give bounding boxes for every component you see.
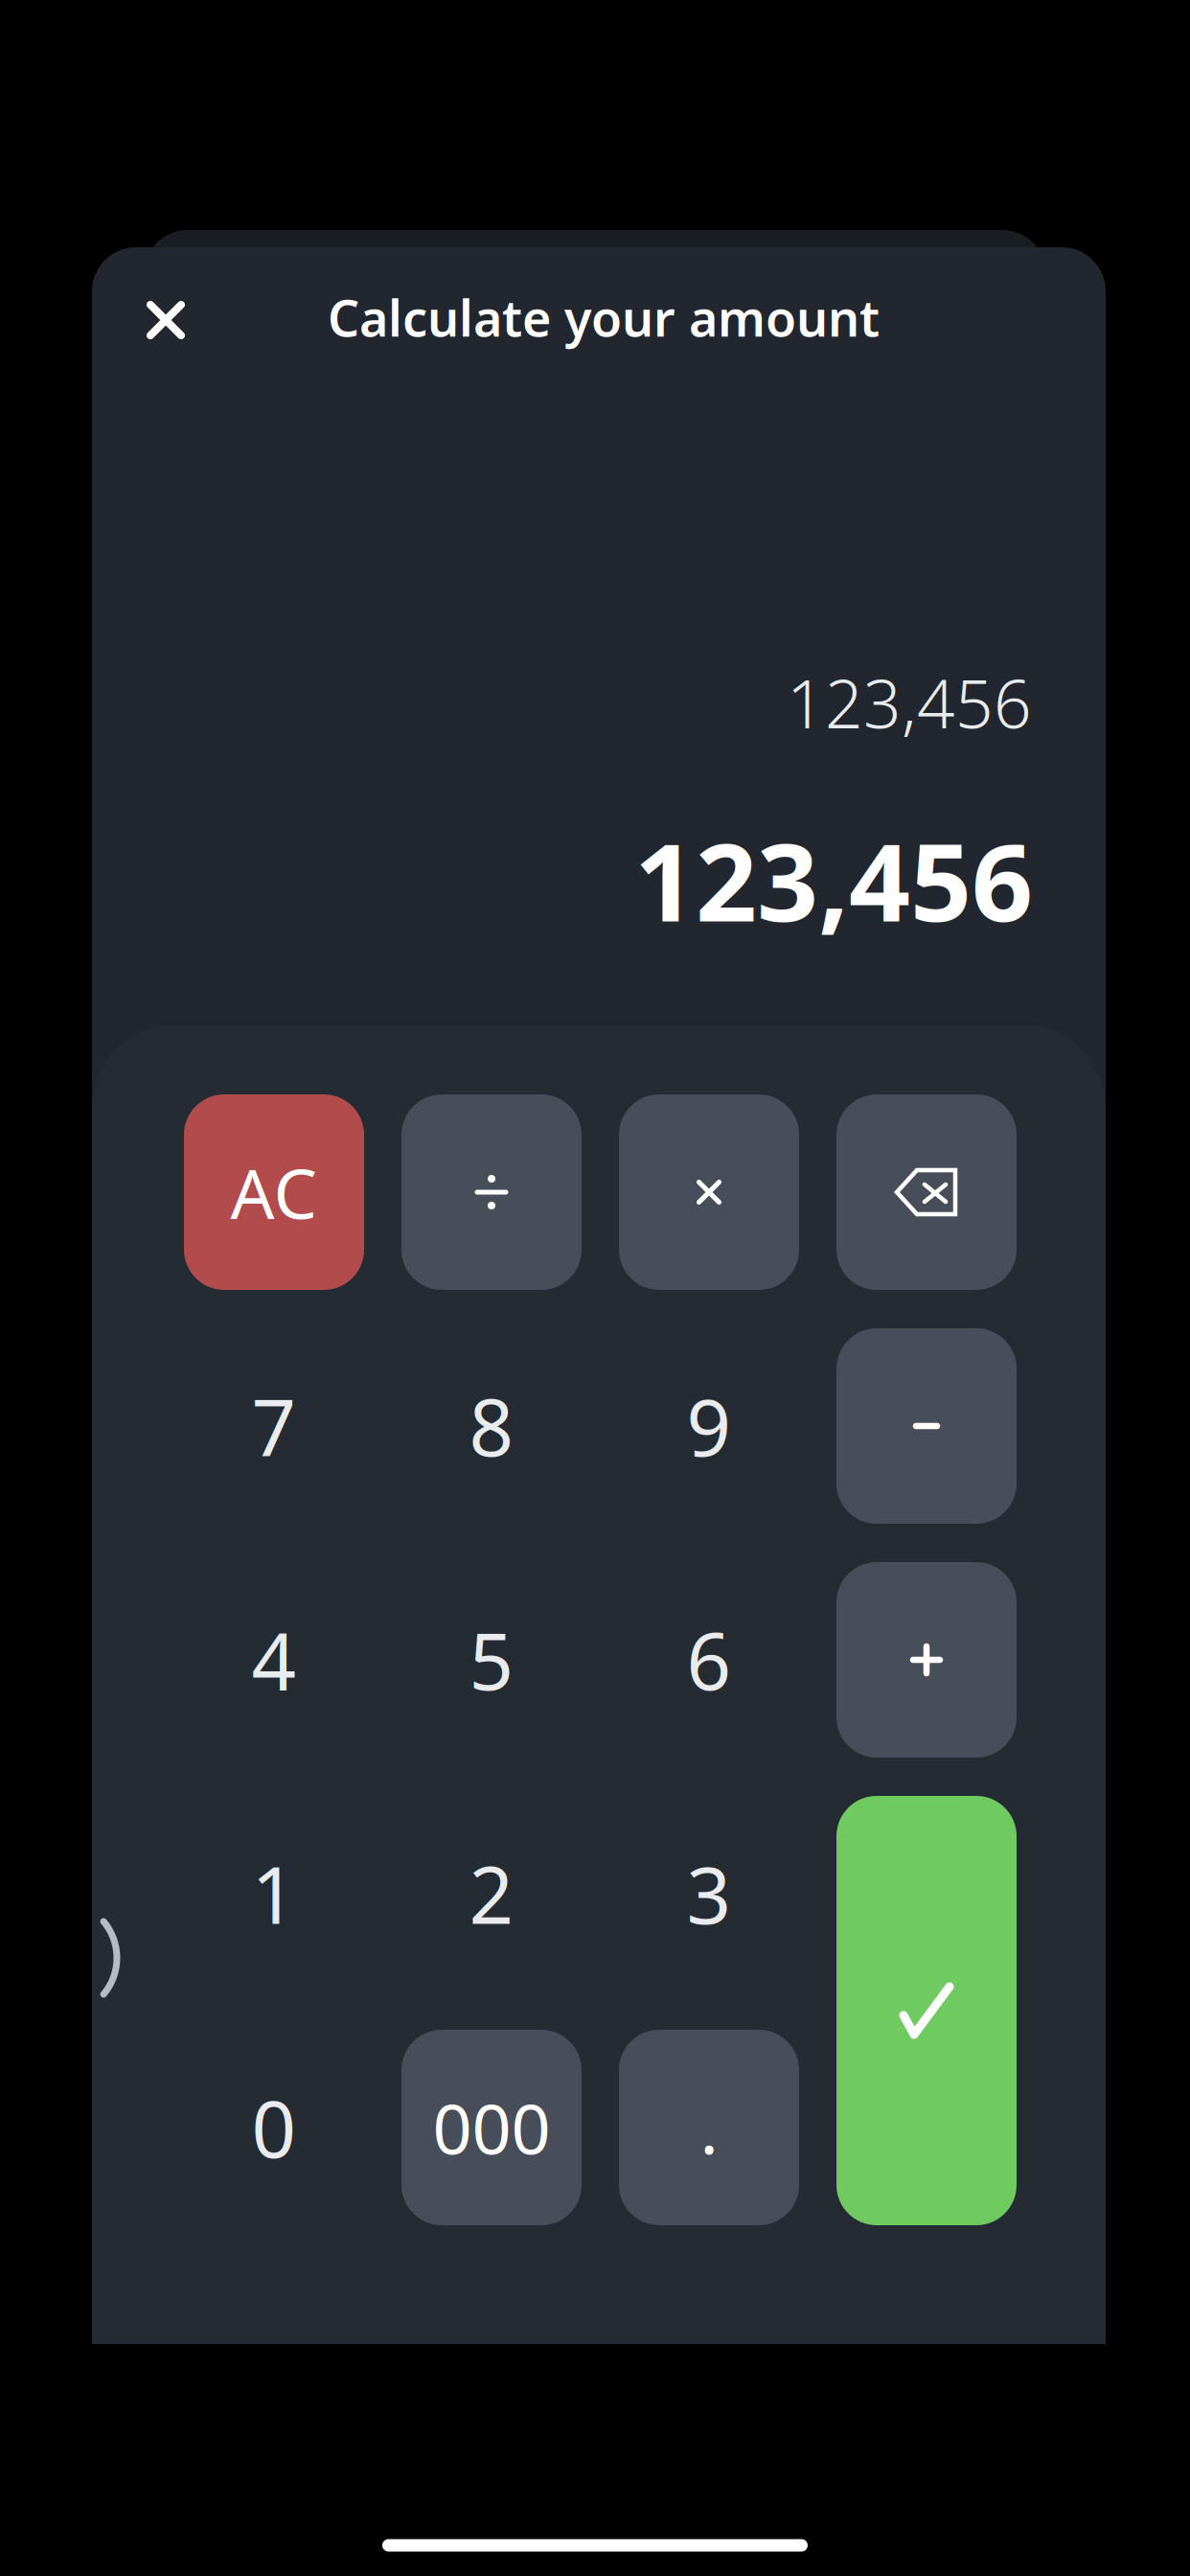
button[interactable]: Divide	[401, 1094, 582, 1290]
staticText: 4	[252, 1608, 297, 1712]
staticText: 8	[469, 1374, 514, 1478]
button[interactable]: 4	[184, 1562, 364, 1758]
button[interactable]: Triple zero	[401, 2030, 582, 2225]
staticText: 3	[687, 1842, 732, 1945]
staticText: 7	[252, 1374, 297, 1478]
button[interactable]: Confirm	[836, 1796, 1017, 2225]
button[interactable]: Backspace	[836, 1094, 1017, 1290]
button[interactable]: 9	[619, 1328, 799, 1524]
staticText: 123,456	[787, 658, 1032, 747]
staticText: 0	[252, 2076, 297, 2179]
button[interactable]: 2	[401, 1796, 582, 1991]
button[interactable]: Multiply	[619, 1094, 799, 1290]
button[interactable]: 7	[184, 1328, 364, 1524]
button[interactable]: 1	[184, 1796, 364, 1991]
button[interactable]: 3	[619, 1796, 799, 1991]
staticText: AC	[230, 1146, 318, 1238]
staticText: .	[700, 2082, 718, 2173]
staticText: 5	[469, 1608, 514, 1712]
button[interactable]: Close	[113, 267, 218, 373]
staticText: 123,456	[634, 808, 1033, 951]
button[interactable]: 6	[619, 1562, 799, 1758]
button[interactable]: 0	[184, 2030, 364, 2225]
button[interactable]: Decimal point	[619, 2030, 799, 2225]
button[interactable]: Plus	[836, 1562, 1017, 1758]
staticText: 1	[252, 1842, 297, 1945]
button[interactable]: 5	[401, 1562, 582, 1758]
staticText: 000	[433, 2082, 550, 2173]
button[interactable]: 8	[401, 1328, 582, 1524]
staticText: 2	[469, 1842, 514, 1945]
button[interactable]: Minus	[836, 1328, 1017, 1524]
staticText: Calculate your amount	[328, 284, 880, 350]
staticText: 9	[687, 1374, 732, 1478]
button[interactable]: All clear	[184, 1094, 364, 1290]
staticText: 6	[687, 1608, 732, 1712]
